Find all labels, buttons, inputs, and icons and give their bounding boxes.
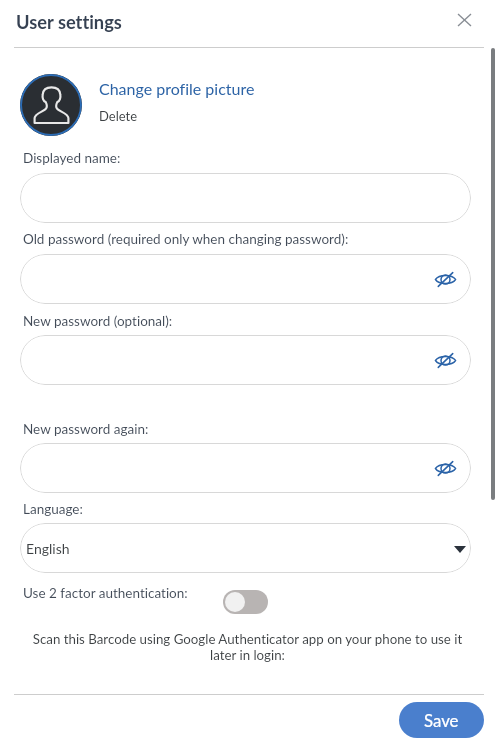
staticText: New password again: — [23, 421, 149, 437]
button[interactable]: English — [20, 523, 471, 573]
button[interactable]: Use 2 factor authentication toggle — [223, 590, 268, 614]
button[interactable]: Save — [399, 702, 484, 738]
staticText: Scan this Barcode using Google Authentic… — [26, 631, 469, 663]
button[interactable]: Delete — [99, 108, 138, 124]
button[interactable]: Show password — [20, 335, 471, 385]
button[interactable]: Show password — [433, 267, 457, 291]
button[interactable] — [20, 173, 471, 223]
staticText: Delete — [99, 108, 138, 124]
staticText: Change profile picture — [99, 79, 255, 98]
staticText: Save — [424, 710, 459, 730]
button[interactable]: Profile picture — [20, 74, 82, 136]
staticText: Use 2 factor authentication: — [23, 585, 188, 601]
button[interactable]: Show password — [20, 443, 471, 493]
staticText: Old password (required only when changin… — [23, 231, 349, 247]
staticText: Displayed name: — [23, 150, 121, 166]
button[interactable]: Show password — [20, 254, 471, 304]
button[interactable]: Show password — [433, 348, 457, 372]
staticText: User settings — [16, 11, 122, 33]
button[interactable]: Show password — [433, 456, 457, 480]
staticText: English — [26, 540, 70, 557]
button[interactable]: Close — [451, 7, 477, 33]
staticText: New password (optional): — [23, 313, 173, 329]
staticText: Language: — [23, 501, 83, 517]
button[interactable]: Change profile picture — [99, 79, 255, 98]
